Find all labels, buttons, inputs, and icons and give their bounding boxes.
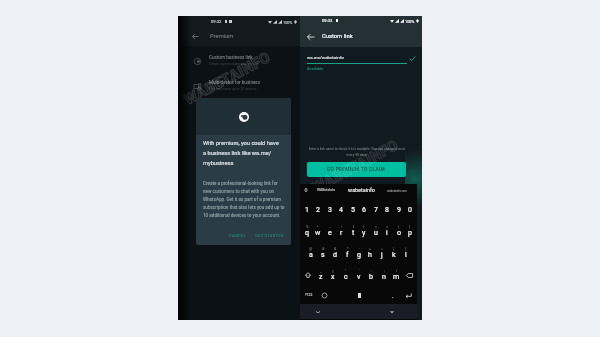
staticText: &: [334, 247, 337, 251]
button[interactable]: Available: [407, 53, 417, 63]
staticText: Available: [307, 66, 324, 71]
staticText: k: [392, 251, 396, 259]
button[interactable]: wabetainfo: [343, 187, 380, 193]
button[interactable]: &: [330, 242, 340, 264]
button[interactable]: ^: [313, 219, 323, 242]
button[interactable]: 9: [394, 196, 404, 219]
staticText: ;: [384, 269, 385, 273]
button[interactable]: -: [354, 242, 364, 264]
staticText: Custom link: [322, 33, 353, 40]
button[interactable]: ~: [325, 219, 335, 242]
button[interactable]: (: [389, 242, 399, 264]
staticText: 9: [397, 206, 401, 214]
button[interactable]: Shift: [302, 264, 313, 286]
staticText: Premium: [210, 33, 234, 40]
button[interactable]: GET STARTED: [252, 231, 287, 240]
staticText: 09:32: [211, 19, 222, 24]
button[interactable]: 0: [405, 196, 415, 219]
button[interactable]: Expand suggestions: [303, 187, 309, 193]
staticText: w: [315, 229, 321, 237]
button[interactable]: .: [387, 286, 398, 304]
staticText: h: [368, 251, 372, 259]
staticText: <: [375, 225, 377, 229]
button[interactable]: 6: [359, 196, 369, 219]
button[interactable]: 4: [336, 196, 346, 219]
button[interactable]: <: [371, 219, 381, 242]
button[interactable]: Emoji: [319, 286, 330, 304]
staticText: m: [393, 273, 400, 281]
staticText: ): [405, 247, 407, 251]
button[interactable]: +: [365, 242, 375, 264]
button[interactable]: ': [354, 264, 364, 286]
button[interactable]: ;: [379, 264, 389, 286]
staticText: j: [381, 251, 383, 259]
button[interactable]: ?123: [303, 286, 314, 304]
button[interactable]: Backspace: [404, 264, 415, 286]
button[interactable]: 2: [313, 196, 323, 219]
button[interactable]: {: [348, 219, 358, 242]
staticText: Create a professional-looking link for n…: [203, 181, 287, 219]
staticText: i: [386, 229, 388, 237]
staticText: 4: [339, 206, 343, 214]
button[interactable]: *: [342, 242, 352, 264]
button[interactable]: =: [377, 242, 387, 264]
staticText: WABETAINFO: [310, 136, 402, 197]
button[interactable]: 8: [382, 196, 392, 219]
staticText: |: [341, 225, 342, 229]
button[interactable]: ¢: [328, 264, 338, 286]
staticText: wa.me/wabetainfo: [307, 55, 344, 60]
staticText: -: [359, 247, 360, 251]
staticText: }: [363, 225, 365, 229]
button[interactable]: ): [401, 242, 411, 264]
staticText: ~: [329, 225, 332, 229]
staticText: 09:33: [322, 18, 333, 23]
button[interactable]: 1: [302, 196, 312, 219]
button[interactable]: 7: [371, 196, 381, 219]
button[interactable]: :: [366, 264, 376, 286]
button[interactable]: GO PREMIUM TO CLAIM: [307, 162, 406, 177]
staticText: d: [333, 251, 337, 259]
button[interactable]: #: [318, 242, 328, 264]
button[interactable]: /: [391, 264, 401, 286]
staticText: ^: [317, 225, 319, 229]
button[interactable]: Hide keyboard: [313, 304, 323, 319]
button[interactable]: %: [302, 219, 312, 242]
staticText: 6: [362, 206, 366, 214]
button[interactable]: ": [341, 264, 351, 286]
staticText: _: [320, 269, 322, 273]
button[interactable]: (: [394, 219, 404, 242]
staticText: /: [396, 269, 398, 273]
staticText: 5: [351, 206, 355, 214]
button[interactable]: Home: [387, 304, 397, 319]
staticText: >: [386, 225, 388, 229]
button[interactable]: ): [405, 219, 415, 242]
staticText: *: [347, 247, 349, 251]
button[interactable]: wabetainfo.com: [380, 189, 414, 192]
staticText: With premium, you could have a business …: [203, 140, 283, 166]
button[interactable]: Enter: [403, 286, 414, 304]
button[interactable]: Back: [190, 31, 201, 42]
staticText: Create a personalized wa.me link: [209, 62, 259, 66]
button[interactable]: Multi-device for business: [178, 73, 300, 98]
staticText: #: [322, 247, 325, 251]
button[interactable]: _: [316, 264, 326, 286]
staticText: e: [328, 229, 332, 237]
staticText: 8: [385, 206, 389, 214]
staticText: +: [369, 247, 372, 251]
button[interactable]: @: [306, 242, 316, 264]
button[interactable]: |: [336, 219, 346, 242]
staticText: @: [309, 247, 313, 251]
button[interactable]: WABetaInfo: [309, 188, 343, 192]
button[interactable]: Custom business link: [178, 48, 300, 73]
button[interactable]: Space: [336, 286, 382, 304]
staticText: .: [392, 292, 394, 299]
button[interactable]: Back: [304, 30, 317, 43]
button[interactable]: }: [359, 219, 369, 242]
staticText: x: [331, 273, 335, 281]
button[interactable]: 5: [348, 196, 358, 219]
button[interactable]: >: [382, 219, 392, 242]
button[interactable]: CANCEL: [226, 231, 250, 240]
staticText: Link and name up to 10 devices: [209, 87, 257, 91]
button[interactable]: 3: [325, 196, 335, 219]
staticText: 0: [408, 206, 412, 214]
